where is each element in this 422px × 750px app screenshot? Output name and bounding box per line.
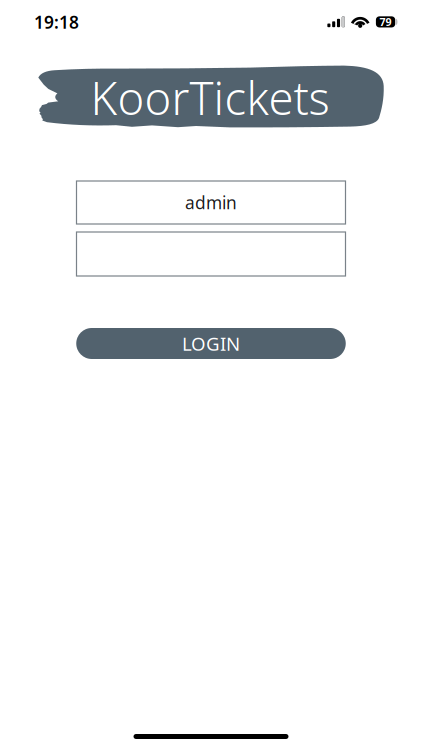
staticText: LOGIN xyxy=(182,331,240,356)
button[interactable] xyxy=(76,232,345,276)
staticText: 79 xyxy=(379,15,391,29)
staticText: 19:18 xyxy=(34,10,79,33)
staticText: KoorTickets xyxy=(90,67,329,128)
staticText: admin xyxy=(185,191,237,214)
button[interactable]: LOGIN xyxy=(76,328,346,359)
button[interactable]: admin xyxy=(76,181,345,224)
